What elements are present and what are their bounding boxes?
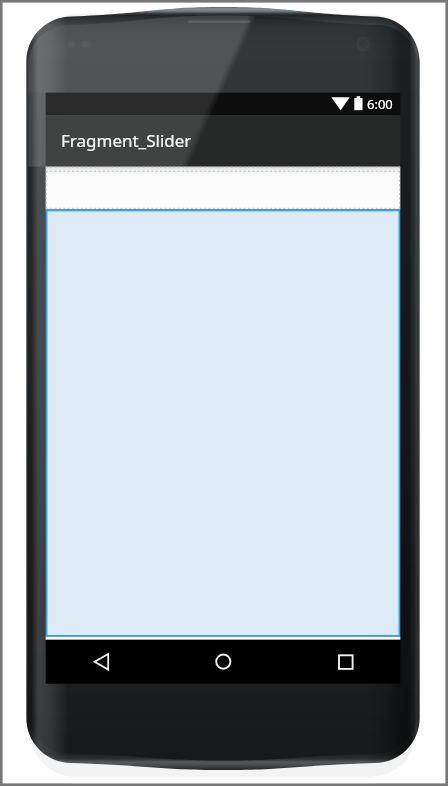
button[interactable]: Fragment_Slider [46, 115, 400, 166]
staticText: 6:00 [367, 95, 393, 113]
staticText: Fragment_Slider [61, 129, 192, 152]
